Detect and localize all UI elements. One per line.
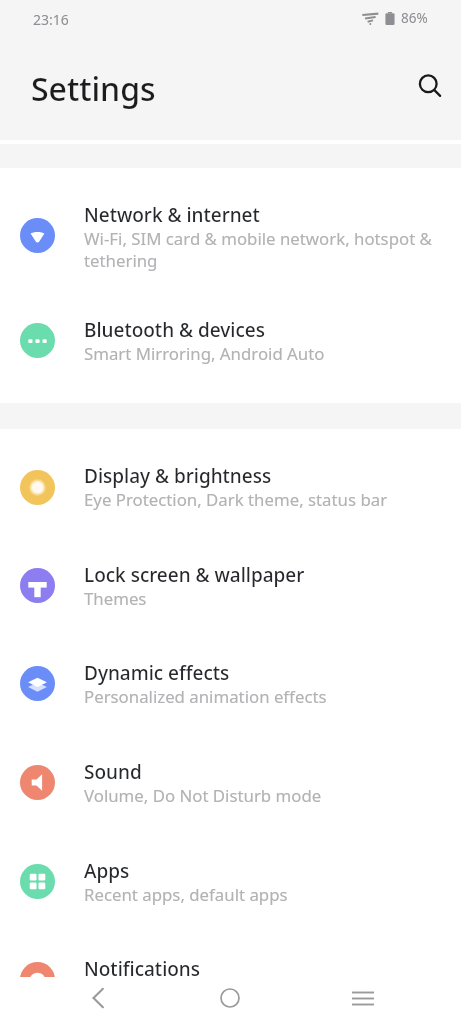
- button[interactable]: Search: [409, 65, 450, 106]
- button[interactable]: Apps: [0, 824, 461, 922]
- staticText: Sound: [84, 759, 142, 785]
- staticText: Notifications: [84, 956, 201, 982]
- staticText: Recent apps, default apps: [84, 883, 288, 906]
- button[interactable]: Bluetooth & devices: [0, 283, 461, 403]
- staticText: Smart Mirroring, Android Auto: [84, 342, 325, 365]
- staticText: Settings: [31, 67, 156, 111]
- staticText: Dynamic effects: [84, 660, 230, 686]
- staticText: 23:16: [33, 10, 69, 29]
- button[interactable]: Display & brightness: [0, 429, 461, 528]
- staticText: Volume, Do Not Disturb mode: [84, 784, 322, 807]
- staticText: Eye Protection, Dark theme, status bar: [84, 488, 388, 511]
- staticText: Network & internet: [84, 202, 260, 228]
- button[interactable]: Network & internet: [0, 168, 461, 283]
- staticText: Ringtone, vibration: [84, 981, 235, 1004]
- staticText: Wi-Fi, SIM card & mobile network, hotspo…: [84, 227, 438, 272]
- staticText: Display & brightness: [84, 463, 272, 489]
- staticText: Personalized animation effects: [84, 685, 327, 708]
- button[interactable]: Back: [76, 976, 120, 1020]
- button[interactable]: Notifications: [0, 922, 461, 1020]
- button[interactable]: Sound: [0, 725, 461, 824]
- staticText: Themes: [84, 587, 147, 610]
- staticText: Lock screen & wallpaper: [84, 562, 305, 588]
- button[interactable]: Dynamic effects: [0, 626, 461, 725]
- staticText: Bluetooth & devices: [84, 317, 265, 343]
- button[interactable]: Home: [208, 976, 252, 1020]
- button[interactable]: Recents: [341, 976, 385, 1020]
- button[interactable]: Lock screen & wallpaper: [0, 528, 461, 626]
- staticText: 86%: [401, 9, 428, 27]
- staticText: Apps: [84, 858, 130, 884]
